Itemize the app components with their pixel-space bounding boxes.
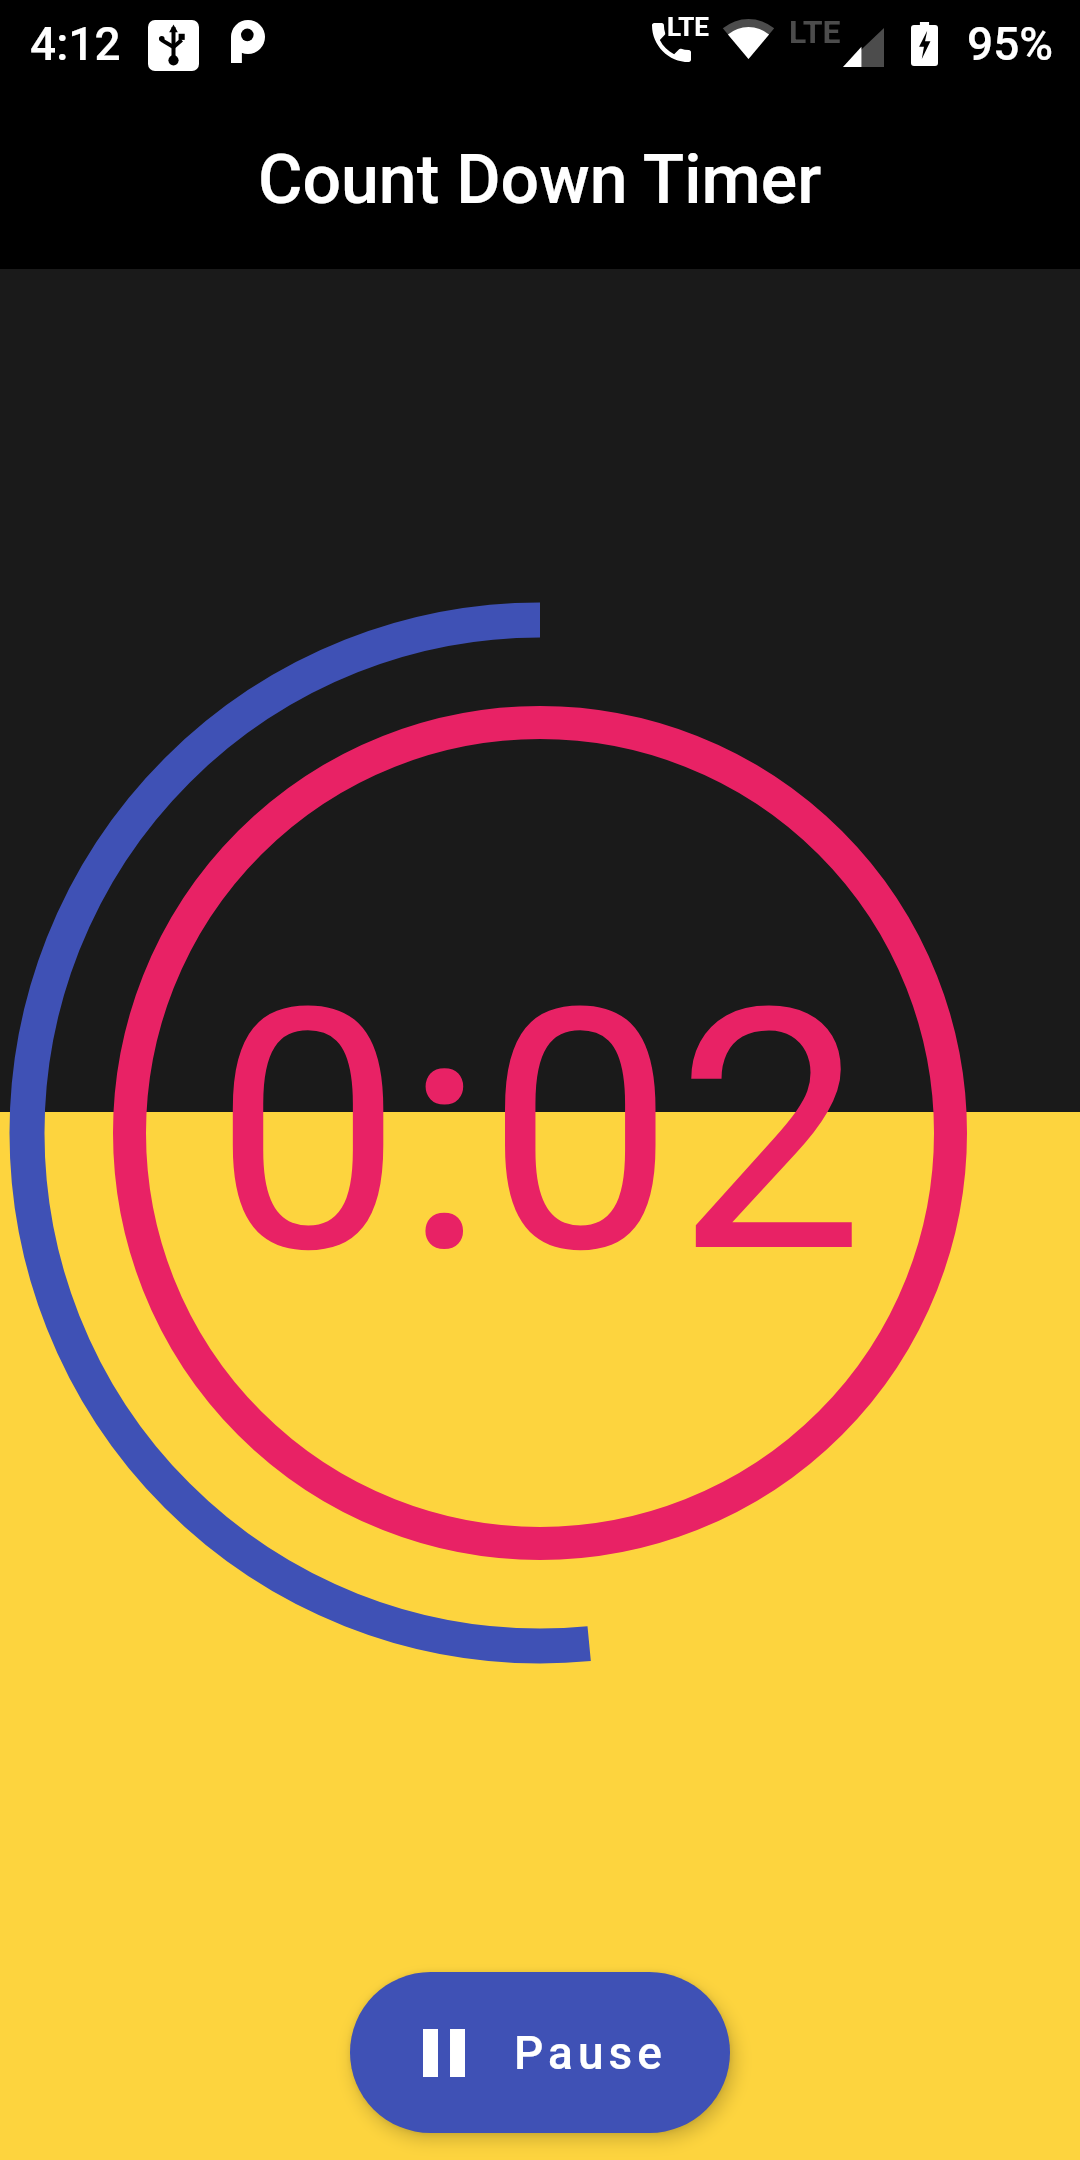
other: USB connected [148, 20, 199, 71]
other: Pushbullet [231, 20, 265, 63]
button[interactable]: Pause timer [350, 1972, 730, 2133]
staticText: LTE [789, 13, 841, 51]
staticText: 4:12 [30, 17, 121, 71]
staticText: LTE [667, 12, 709, 42]
other: Wi-Fi [723, 19, 774, 59]
staticText: 95% [967, 17, 1054, 71]
other: Signal strength [843, 28, 884, 67]
staticText: Pause [514, 2026, 667, 2080]
staticText: Count Down Timer [258, 140, 822, 220]
staticText: 0:02 [214, 936, 866, 1329]
other: Battery charging [911, 22, 938, 66]
other: Mobile data [652, 23, 691, 62]
